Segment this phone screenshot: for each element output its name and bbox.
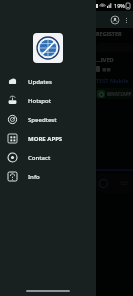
button[interactable] [33,33,63,63]
staticText: …IVED [96,56,114,63]
staticText: Info [28,173,40,181]
button[interactable]: Hotspot [0,91,96,110]
button[interactable]: More options [121,15,131,25]
staticText: MORE APPS [28,135,63,143]
staticText: 19% [114,2,125,9]
button[interactable]: Speedtest [0,110,96,129]
staticText: Dev Team. [79,13,103,27]
staticText: Hotspot [28,97,52,105]
staticText: Updates [28,78,52,86]
button[interactable]: Contact [0,148,96,167]
staticText: TEST Mobile [96,77,129,84]
button[interactable]: Account [108,13,121,26]
staticText: Contact [28,154,51,162]
staticText: WHATSAPP [107,91,132,97]
button[interactable]: Info [0,167,96,186]
button[interactable]: WHATSAPP [96,88,133,99]
staticText: Speedtest [28,116,57,124]
button[interactable]: Updates [0,72,96,91]
staticText: ◼◼ [102,66,111,72]
staticText: REGISTER [96,30,122,37]
button[interactable]: MORE APPS [0,129,96,148]
